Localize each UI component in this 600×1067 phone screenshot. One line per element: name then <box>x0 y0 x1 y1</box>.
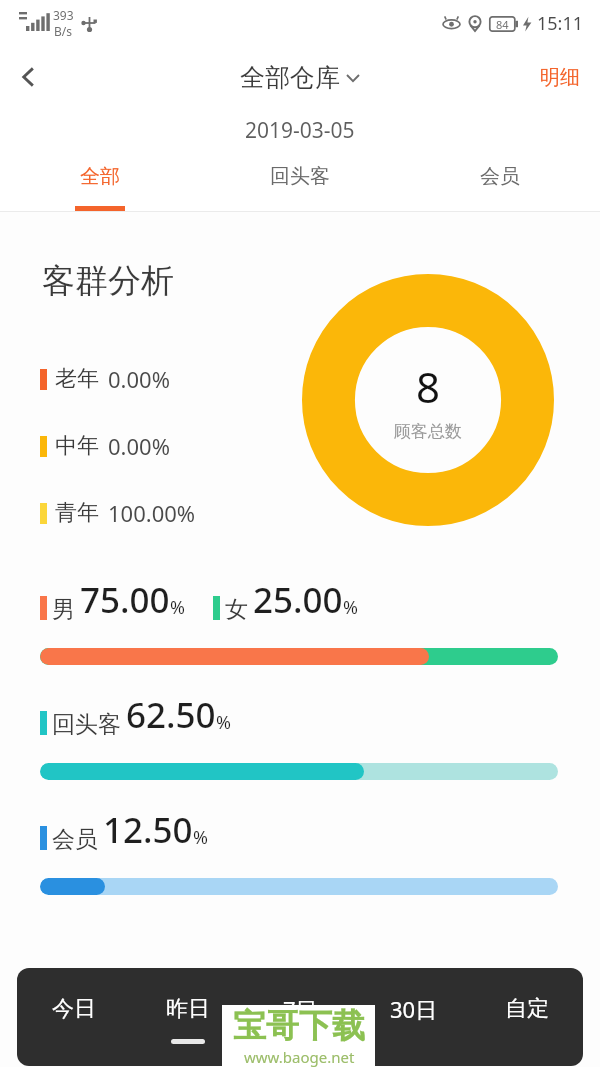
staticText: 会员 <box>480 164 520 189</box>
staticText: 全部 <box>80 164 120 189</box>
staticText: 75.00 <box>80 576 170 624</box>
staticText: 宝哥下载 <box>233 1005 365 1047</box>
button[interactable]: 全部仓库 <box>234 56 366 99</box>
staticText: 84 <box>496 17 509 32</box>
button[interactable]: 全部 <box>0 152 200 211</box>
staticText: 老年 <box>55 365 99 393</box>
staticText: 30日 <box>390 994 438 1024</box>
staticText: 2019-03-05 <box>245 116 355 145</box>
staticText: 25.00 <box>253 576 343 624</box>
staticText: 回头客 <box>52 710 121 739</box>
button[interactable]: 明细 <box>520 51 600 104</box>
button[interactable]: 今日 <box>17 968 131 1066</box>
button[interactable]: 老年 <box>40 364 170 394</box>
staticText: 今日 <box>52 995 96 1023</box>
staticText: 昨日 <box>166 995 210 1023</box>
staticText: 中年 <box>55 432 99 460</box>
button[interactable]: 中年 <box>40 431 170 461</box>
staticText: 8 <box>416 358 441 415</box>
staticText: 12.50 <box>103 806 193 854</box>
button[interactable]: 青年 <box>40 498 196 528</box>
staticText: 100.00% <box>108 498 196 528</box>
staticText: 393 <box>53 7 74 23</box>
button[interactable]: 会员 <box>400 152 600 211</box>
staticText: % <box>216 710 231 735</box>
staticText: 全部仓库 <box>240 62 340 93</box>
staticText: 女 <box>225 595 248 624</box>
button[interactable]: 昨日 <box>131 968 244 1066</box>
staticText: 客群分析 <box>42 260 174 302</box>
staticText: % <box>193 825 208 850</box>
staticText: 0.00% <box>108 364 170 394</box>
button[interactable]: 回头客 <box>200 152 400 211</box>
staticText: 15:11 <box>537 11 584 36</box>
staticText: B/s <box>54 23 73 39</box>
button[interactable]: 7日 <box>244 968 357 1066</box>
staticText: 顾客总数 <box>394 421 462 442</box>
staticText: www.baoge.net <box>244 1047 355 1067</box>
staticText: 回头客 <box>270 164 330 189</box>
button[interactable]: 自定 <box>470 968 583 1066</box>
staticText: 明细 <box>540 65 580 90</box>
staticText: 0.00% <box>108 431 170 461</box>
staticText: % <box>170 595 185 620</box>
staticText: 男 <box>52 595 75 624</box>
staticText: 自定 <box>505 995 549 1023</box>
staticText: 会员 <box>52 825 98 854</box>
staticText: 62.50 <box>126 691 216 739</box>
staticText: % <box>343 595 358 620</box>
staticText: 青年 <box>55 499 99 527</box>
button[interactable]: 30日 <box>357 968 470 1066</box>
button[interactable]: Back <box>0 48 58 106</box>
staticText: 7日 <box>283 994 318 1024</box>
